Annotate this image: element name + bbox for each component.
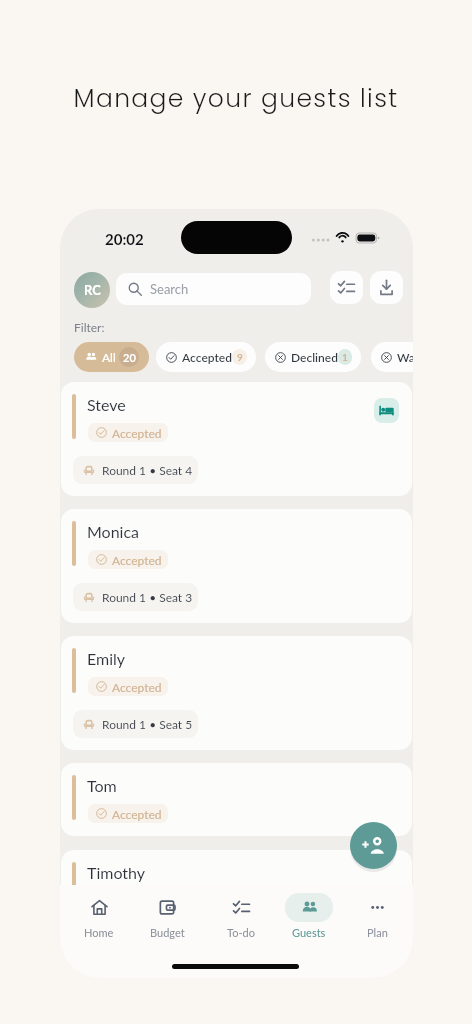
button[interactable]: Search bbox=[116, 273, 311, 305]
staticText: Accepted bbox=[112, 553, 162, 567]
staticText: Round 1 • Seat 5 bbox=[102, 717, 193, 731]
staticText: All bbox=[102, 350, 116, 364]
button[interactable]: Waiting bbox=[371, 342, 413, 372]
staticText: Filter: bbox=[74, 320, 105, 334]
staticText: Round 1 • Seat 4 bbox=[102, 463, 193, 477]
button[interactable]: To-do bbox=[213, 893, 269, 939]
button[interactable]: Home bbox=[71, 893, 127, 939]
staticText: Waiting bbox=[397, 350, 413, 364]
staticText: Round 1 • Seat 3 bbox=[102, 590, 193, 604]
staticText: Accepted bbox=[182, 350, 232, 364]
staticText: Search bbox=[150, 281, 189, 297]
staticText: Emily bbox=[87, 649, 126, 668]
staticText: Accepted bbox=[112, 680, 162, 694]
button[interactable]: All bbox=[74, 342, 149, 372]
button[interactable]: Timothy bbox=[61, 850, 412, 923]
staticText: Steve bbox=[87, 395, 126, 414]
staticText: 20:02 bbox=[105, 230, 144, 248]
staticText: Home bbox=[84, 926, 114, 939]
staticText: Guests bbox=[292, 926, 326, 939]
staticText: Accepted bbox=[112, 807, 162, 821]
button[interactable]: Add guest bbox=[350, 822, 397, 869]
staticText: Budget bbox=[150, 926, 185, 939]
staticText: Plan bbox=[367, 926, 388, 939]
button[interactable]: Accepted bbox=[156, 342, 256, 372]
staticText: To-do bbox=[227, 926, 255, 939]
button[interactable]: Download guest list bbox=[370, 271, 403, 304]
staticText: Accepted bbox=[112, 894, 162, 908]
button[interactable]: Select guests bbox=[330, 271, 363, 304]
staticText: Timothy bbox=[87, 863, 146, 882]
button[interactable]: Profile bbox=[74, 272, 110, 308]
button[interactable]: Declined bbox=[265, 342, 361, 372]
button[interactable]: Emily bbox=[61, 636, 412, 750]
staticText: Accepted bbox=[112, 426, 162, 440]
staticText: RC bbox=[84, 282, 101, 298]
staticText: Declined bbox=[291, 350, 338, 364]
button[interactable]: Steve bbox=[61, 382, 412, 496]
button[interactable]: Guests bbox=[281, 893, 337, 939]
staticText: 20 bbox=[123, 351, 136, 364]
staticText: Monica bbox=[87, 522, 140, 541]
button[interactable]: Budget bbox=[139, 893, 195, 939]
button[interactable]: Round 1 • Seat 5 bbox=[73, 710, 198, 738]
staticText: 9 bbox=[237, 351, 243, 363]
button[interactable]: Accommodation bbox=[374, 398, 399, 423]
button[interactable]: Round 1 • Seat 3 bbox=[73, 583, 198, 611]
staticText: Manage your guests list bbox=[0, 81, 472, 116]
staticText: 1 bbox=[342, 351, 348, 363]
button[interactable]: Round 1 • Seat 4 bbox=[73, 456, 198, 484]
button[interactable]: Plan bbox=[349, 893, 405, 939]
button[interactable]: Tom bbox=[61, 763, 412, 836]
button[interactable]: Monica bbox=[61, 509, 412, 623]
staticText: Tom bbox=[87, 776, 117, 795]
